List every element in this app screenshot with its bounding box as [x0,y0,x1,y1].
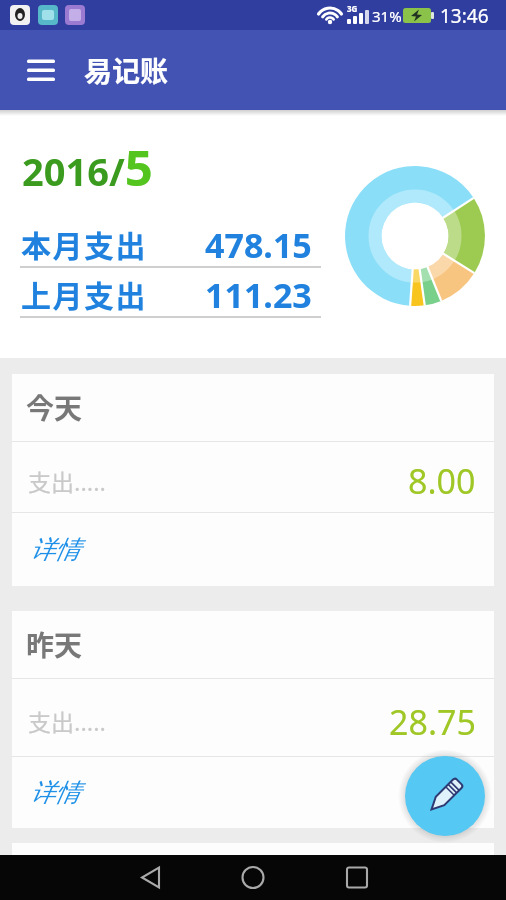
button[interactable] [405,756,485,836]
staticText: 支出..... [28,464,106,497]
staticText: 易记账 [84,50,169,91]
staticText: 昨天 [26,624,83,665]
button[interactable]: 今天 [12,374,494,441]
button[interactable]: 详情 [12,757,494,828]
staticText: 今天 [26,387,83,428]
button[interactable] [168,855,337,900]
button[interactable] [337,855,506,900]
staticText: 详情 [30,777,80,808]
staticText: 本月支出 [21,222,147,265]
staticText: 支出..... [28,704,106,737]
staticText: 3G [347,3,358,14]
button[interactable]: 详情 [12,513,494,586]
staticText: 28.75 [389,699,476,745]
staticText: 13:46 [440,3,489,29]
staticText: 478.15 [205,222,312,268]
button[interactable] [0,855,168,900]
staticText: 详情 [30,534,80,565]
staticText: 2016/5 [22,134,153,201]
staticText: 上月支出 [21,272,147,315]
button[interactable] [13,42,69,98]
staticText: 31% [372,6,402,26]
staticText: 111.23 [205,272,312,318]
button[interactable]: 昨天 [12,611,494,678]
staticText: 8.00 [408,458,476,504]
